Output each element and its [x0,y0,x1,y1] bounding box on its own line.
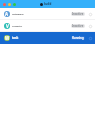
staticText: Inactive [72,24,84,28]
staticText: A [5,11,9,17]
staticText: VSHgit sl [12,25,23,28]
staticText: build [44,2,52,6]
button[interactable]: A [0,8,95,20]
button[interactable]: More options [88,36,92,40]
button[interactable]: Inactive [71,24,85,28]
staticText: W [5,35,10,41]
button[interactable]: V [0,20,95,32]
button[interactable]: Running [71,36,85,40]
button[interactable]: Inactive [71,12,85,16]
staticText: AutoBuild [12,13,24,16]
button[interactable]: W [0,32,95,44]
staticText: Running [72,36,84,40]
staticText: task [12,36,19,40]
staticText: Inactive [72,12,84,16]
staticText: V [6,23,9,29]
button[interactable]: More options [88,12,92,16]
button[interactable]: More options [88,24,92,28]
